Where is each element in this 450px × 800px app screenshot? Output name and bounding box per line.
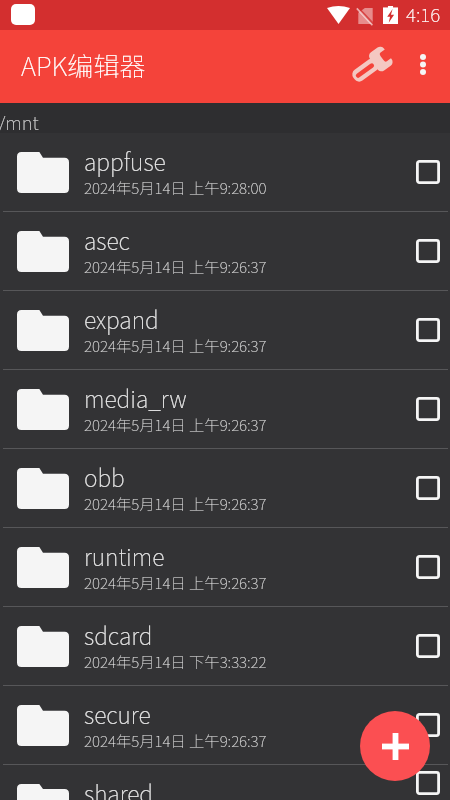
staticText: expand: [84, 302, 159, 335]
button[interactable]: media_rw: [0, 370, 450, 448]
button[interactable]: Select: [404, 227, 450, 275]
button[interactable]: expand: [0, 291, 450, 369]
staticText: 2024年5月14日 上午9:26:37: [84, 571, 267, 593]
staticText: sdcard: [84, 618, 153, 651]
staticText: 2024年5月14日 上午9:26:37: [84, 255, 267, 277]
staticText: runtime: [84, 539, 165, 572]
staticText: 2024年5月14日 上午9:26:37: [84, 729, 267, 751]
staticText: shared: [84, 776, 154, 800]
button[interactable]: Tools: [342, 30, 398, 103]
button[interactable]: shared: [0, 765, 450, 800]
staticText: media_rw: [84, 381, 187, 414]
button[interactable]: More options: [399, 28, 447, 101]
button[interactable]: runtime: [0, 528, 450, 606]
button[interactable]: Select: [404, 701, 450, 749]
button[interactable]: asec: [0, 212, 450, 290]
staticText: 2024年5月14日 上午9:28:00: [84, 176, 267, 198]
button[interactable]: Select: [404, 148, 450, 196]
button[interactable]: Select: [404, 306, 450, 354]
button[interactable]: appfuse: [0, 133, 450, 211]
staticText: /mnt: [0, 109, 39, 136]
button[interactable]: Select: [404, 385, 450, 433]
staticText: 2024年5月14日 下午3:33:22: [84, 650, 267, 672]
staticText: appfuse: [84, 144, 166, 177]
staticText: 2024年5月14日 上午9:26:37: [84, 413, 267, 435]
button[interactable]: Select: [404, 622, 450, 670]
button[interactable]: Select: [404, 765, 450, 800]
button[interactable]: Select: [404, 464, 450, 512]
staticText: APK编辑器: [21, 46, 146, 84]
staticText: 4:16: [406, 0, 441, 28]
staticText: asec: [84, 223, 130, 256]
button[interactable]: Add: [360, 711, 430, 781]
staticText: 2024年5月14日 上午9:26:37: [84, 492, 267, 514]
staticText: obb: [84, 460, 125, 493]
button[interactable]: sdcard: [0, 607, 450, 685]
staticText: 2024年5月14日 上午9:26:37: [84, 334, 267, 356]
button[interactable]: secure: [0, 686, 450, 764]
staticText: secure: [84, 697, 151, 730]
button[interactable]: obb: [0, 449, 450, 527]
button[interactable]: Select: [404, 543, 450, 591]
